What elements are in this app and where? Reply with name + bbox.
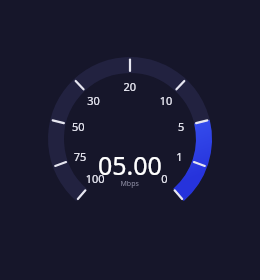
button[interactable]: Speed test gauge, 05.00 Mbps — [0, 0, 260, 280]
